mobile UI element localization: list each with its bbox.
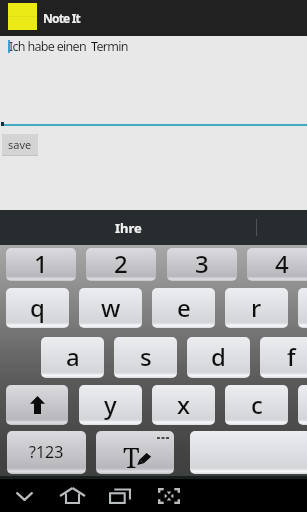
staticText: e: [177, 291, 191, 324]
button[interactable]: Shift: [6, 385, 68, 425]
button[interactable]: a: [41, 337, 104, 378]
staticText: x: [177, 388, 191, 421]
button[interactable]: save: [2, 134, 38, 155]
button[interactable]: q: [6, 288, 69, 328]
button[interactable]: s: [114, 337, 177, 378]
button[interactable]: 1: [6, 248, 76, 281]
staticText: 2: [114, 248, 128, 280]
button[interactable]: d: [187, 337, 250, 378]
button[interactable]: Ihre: [100, 210, 156, 245]
staticText: a: [66, 340, 80, 373]
staticText: w: [101, 291, 121, 324]
button[interactable]: Home: [59, 486, 85, 506]
button[interactable]: 3: [167, 248, 237, 281]
button[interactable]: Hide keyboard: [11, 486, 37, 506]
staticText: ?123: [29, 441, 64, 463]
staticText: c: [251, 388, 263, 421]
button[interactable]: c: [225, 385, 288, 425]
staticText: d: [211, 340, 226, 373]
staticText: 4: [275, 248, 289, 280]
button[interactable]: y: [79, 385, 142, 425]
staticText: T: [123, 439, 140, 474]
staticText: Note It: [43, 10, 81, 26]
staticText: Ich habe einen Termin: [9, 38, 128, 55]
button[interactable]: 2: [86, 248, 156, 281]
staticText: y: [104, 388, 117, 421]
staticText: 3: [195, 248, 209, 280]
button[interactable]: f: [260, 337, 307, 378]
staticText: 1: [34, 248, 48, 280]
button[interactable]: x: [152, 385, 215, 425]
button[interactable]: Switch input method: [156, 486, 182, 506]
staticText: q: [30, 291, 45, 324]
staticText: save: [8, 137, 32, 152]
staticText: f: [287, 340, 296, 373]
staticText: s: [140, 340, 152, 373]
button[interactable]: t: [298, 288, 307, 328]
button[interactable]: Recent apps: [107, 486, 133, 506]
button[interactable]: v: [298, 385, 307, 425]
staticText: Ihre: [115, 219, 142, 237]
button[interactable]: e: [152, 288, 215, 328]
button[interactable]: Handwriting input: [96, 431, 174, 474]
button[interactable]: ?123: [7, 431, 86, 474]
button[interactable]: r: [225, 288, 288, 328]
button[interactable]: Space: [190, 431, 307, 474]
button[interactable]: w: [79, 288, 142, 328]
button[interactable]: 4: [247, 248, 307, 281]
staticText: r: [251, 291, 262, 324]
